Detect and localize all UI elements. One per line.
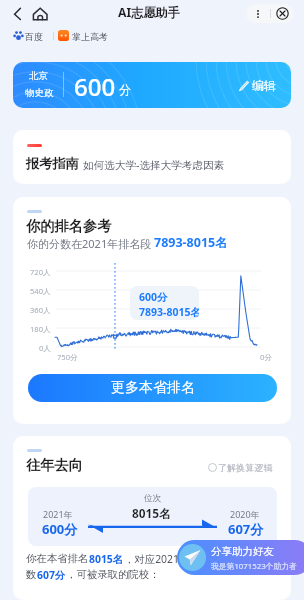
staticText: 更多本省排名	[111, 379, 195, 397]
staticText: 你的排名参考	[26, 217, 112, 235]
staticText: 540人	[30, 286, 51, 296]
staticText: 位次	[144, 493, 162, 504]
staticText: 北京	[29, 70, 48, 82]
staticText: 7893-8015名	[154, 234, 228, 251]
button[interactable]: Close	[271, 4, 294, 23]
staticText: ，可被录取的院校：	[66, 568, 160, 581]
staticText: 报考指南	[26, 155, 79, 172]
button[interactable]: 更多本省排名	[28, 374, 277, 402]
staticText: 180人	[30, 324, 51, 334]
staticText: 607分	[37, 568, 66, 582]
staticText: 720人	[30, 267, 51, 277]
staticText: 分	[119, 82, 131, 97]
staticText: 分享助力好友	[211, 545, 274, 558]
button[interactable]: 北京	[13, 62, 291, 108]
button[interactable]: 报考指南	[13, 130, 291, 184]
button[interactable]: Home	[31, 6, 51, 26]
button[interactable]: 了解换算逻辑	[208, 461, 273, 474]
staticText: 百度	[25, 31, 43, 42]
button[interactable]: More options	[246, 4, 270, 23]
button[interactable]: 分享助力好友	[177, 540, 304, 575]
staticText: 8015名	[132, 505, 171, 521]
staticText: 600	[74, 70, 116, 103]
staticText: 750分	[57, 352, 78, 362]
staticText: 你的分数在2021年排名段	[27, 236, 152, 251]
staticText: 往年去向	[26, 456, 83, 474]
staticText: 如何选大学-选择大学考虑因素	[83, 158, 225, 172]
staticText: 掌上高考	[72, 31, 108, 42]
button[interactable]: Back	[8, 3, 28, 23]
staticText: ，对应2021年高考分	[124, 552, 221, 566]
staticText: 600分	[139, 290, 168, 304]
staticText: 0分	[260, 352, 272, 362]
staticText: 了解换算逻辑	[218, 462, 273, 473]
staticText: 360人	[30, 305, 51, 315]
staticText: 607分	[228, 520, 264, 538]
staticText: 2021年	[43, 508, 73, 520]
staticText: 你在本省排名	[26, 552, 89, 565]
staticText: 7893-8015名	[139, 305, 199, 319]
staticText: 物史政	[25, 87, 54, 99]
staticText: 8015名	[89, 552, 124, 566]
button[interactable]: 编辑	[238, 73, 276, 97]
staticText: 编辑	[252, 78, 276, 93]
staticText: 600分	[42, 520, 78, 538]
staticText: 0人	[39, 343, 51, 353]
staticText: 数	[26, 568, 37, 581]
staticText: 2020年	[230, 508, 260, 520]
staticText: AI志愿助手	[118, 4, 180, 21]
staticText: 我是第1071523个助力者	[211, 561, 297, 572]
